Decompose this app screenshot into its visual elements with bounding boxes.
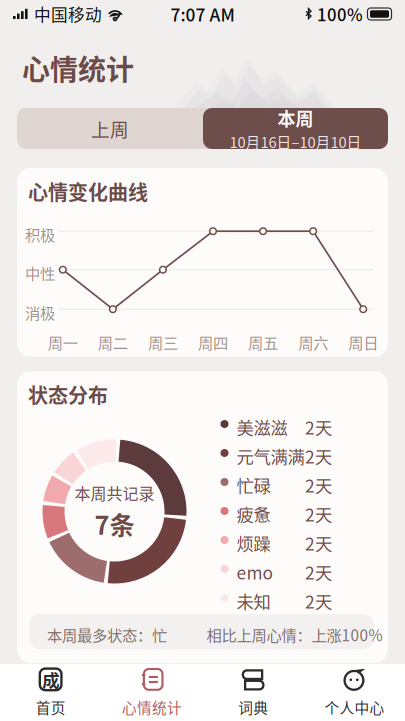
staticText: 状态分布 (28, 380, 108, 409)
staticText: 7:07 AM (170, 1, 234, 27)
staticText: 心情统计 (122, 696, 182, 718)
staticText: 2天 (305, 414, 332, 440)
staticText: 首页 (36, 696, 66, 718)
staticText: 元气满满 (236, 443, 304, 469)
staticText: 本周共记录 (74, 481, 154, 504)
staticText: 烦躁 (236, 530, 270, 556)
staticText: 2天 (305, 588, 332, 614)
staticText: 10月16日–10月10日 (229, 131, 361, 152)
staticText: 词典 (238, 696, 268, 718)
staticText: 未知 (236, 588, 270, 614)
staticText: 100% (317, 2, 363, 26)
button[interactable]: 本周 (203, 108, 388, 149)
button[interactable]: 心情统计 (101, 664, 202, 721)
staticText: 2天 (305, 501, 332, 527)
staticText: 消极 (25, 301, 55, 323)
staticText: 7条 (94, 505, 134, 542)
staticText: 周一 (48, 331, 78, 353)
staticText: 心情统计 (22, 48, 134, 88)
staticText: 美滋滋 (236, 414, 287, 440)
staticText: 2天 (305, 443, 332, 469)
button[interactable]: 个人中心 (304, 664, 405, 721)
staticText: 2天 (305, 530, 332, 556)
button[interactable]: 成 (0, 664, 101, 721)
staticText: 相比上周心情：上涨100% (206, 623, 382, 646)
staticText: 上周 (91, 115, 129, 142)
button[interactable]: 上周 (17, 108, 203, 149)
staticText: 2天 (305, 472, 332, 498)
staticText: 本周 (277, 105, 313, 131)
staticText: 本周最多状态：忙 (47, 623, 167, 646)
staticText: 个人中心 (324, 696, 384, 718)
staticText: 积极 (25, 223, 55, 245)
staticText: emo (236, 559, 273, 585)
staticText: 周二 (98, 331, 128, 353)
staticText: 周三 (148, 331, 178, 353)
staticText: 2天 (305, 559, 332, 585)
staticText: 疲惫 (236, 501, 270, 527)
button[interactable]: 词典 (202, 664, 304, 721)
staticText: 忙碌 (236, 472, 270, 498)
staticText: 中国移动 (34, 2, 102, 26)
staticText: 中性 (25, 262, 55, 284)
staticText: 周四 (198, 331, 228, 353)
staticText: 周五 (248, 331, 278, 353)
staticText: 心情变化曲线 (28, 177, 148, 206)
staticText: 成 (42, 667, 59, 692)
staticText: 周六 (298, 331, 328, 353)
staticText: 周日 (348, 331, 378, 353)
